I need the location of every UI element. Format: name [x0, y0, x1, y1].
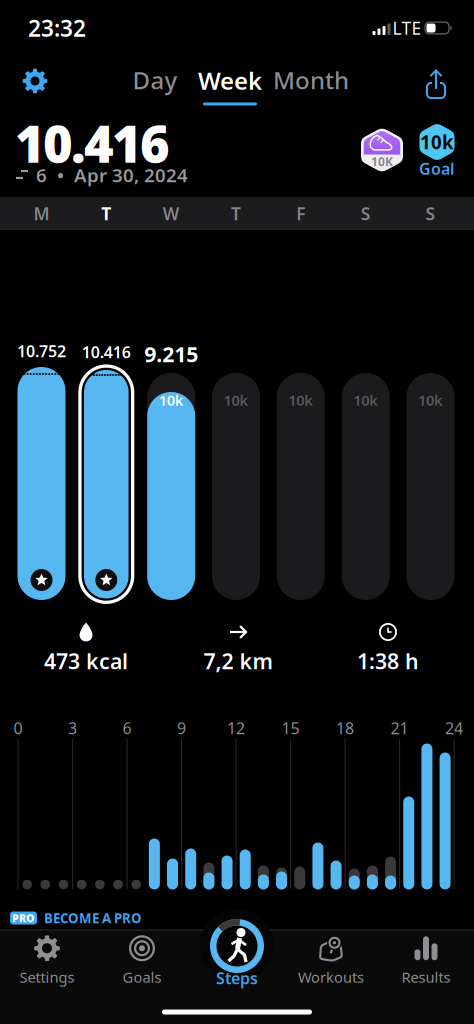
- button[interactable]: [18, 64, 52, 98]
- staticText: 10k: [420, 130, 454, 154]
- staticText: Goals: [122, 967, 161, 987]
- staticText: 10.416: [82, 341, 131, 363]
- staticText: 10.416: [15, 109, 170, 177]
- staticText: Day: [132, 64, 177, 96]
- staticText: 6: [123, 717, 132, 739]
- button[interactable]: Week: [198, 65, 262, 105]
- staticText: 10k: [288, 390, 313, 410]
- staticText: 10k: [159, 390, 184, 410]
- staticText: Steps: [216, 967, 258, 989]
- staticText: 3: [68, 717, 77, 739]
- staticText: 10K: [371, 153, 393, 169]
- staticText: F: [296, 202, 305, 225]
- staticText: 15: [282, 717, 300, 739]
- staticText: T: [101, 202, 111, 225]
- staticText: Week: [198, 65, 262, 96]
- staticText: 0: [14, 717, 23, 739]
- staticText: 24: [445, 717, 463, 739]
- button[interactable]: [78, 364, 134, 604]
- staticText: 10k: [353, 390, 378, 410]
- staticText: 10.752: [17, 340, 66, 362]
- staticText: T: [231, 202, 241, 225]
- staticText: 12: [227, 717, 245, 739]
- staticText: 9.215: [144, 340, 198, 368]
- staticText: Month: [273, 64, 349, 96]
- button[interactable]: Workouts: [288, 932, 374, 988]
- button[interactable]: Month: [273, 64, 349, 96]
- staticText: W: [163, 202, 180, 225]
- button[interactable]: Goals: [99, 932, 185, 988]
- button[interactable]: Day: [132, 64, 177, 96]
- staticText: 18: [336, 717, 354, 739]
- button[interactable]: [361, 127, 403, 172]
- staticText: 6 • Apr 30, 2024: [36, 163, 188, 187]
- button[interactable]: 10k: [417, 120, 457, 178]
- staticText: Results: [401, 967, 450, 987]
- staticText: 7,2 km: [203, 647, 272, 675]
- button[interactable]: [406, 373, 454, 600]
- staticText: BECOME A PRO: [44, 909, 142, 927]
- button[interactable]: [277, 373, 325, 600]
- staticText: Workouts: [298, 967, 364, 987]
- button[interactable]: PRO: [10, 909, 142, 927]
- button[interactable]: [200, 909, 274, 983]
- staticText: 23:32: [28, 13, 86, 43]
- staticText: S: [361, 202, 371, 225]
- staticText: 21: [391, 717, 409, 739]
- staticText: 10k: [418, 390, 443, 410]
- staticText: 473 kcal: [44, 647, 128, 675]
- staticText: M: [33, 202, 49, 225]
- button[interactable]: [342, 373, 390, 600]
- button[interactable]: Settings: [4, 932, 90, 988]
- button[interactable]: Results: [383, 932, 469, 988]
- staticText: Goal: [419, 158, 455, 179]
- button[interactable]: [419, 65, 453, 99]
- button[interactable]: [212, 373, 260, 600]
- button[interactable]: [147, 373, 195, 600]
- staticText: Settings: [19, 967, 74, 987]
- staticText: 10k: [223, 390, 248, 410]
- staticText: PRO: [12, 911, 35, 925]
- staticText: 1:38 h: [357, 647, 419, 675]
- button[interactable]: [17, 367, 65, 600]
- staticText: S: [425, 202, 435, 225]
- staticText: LTE: [392, 16, 421, 39]
- staticText: 9: [177, 717, 186, 739]
